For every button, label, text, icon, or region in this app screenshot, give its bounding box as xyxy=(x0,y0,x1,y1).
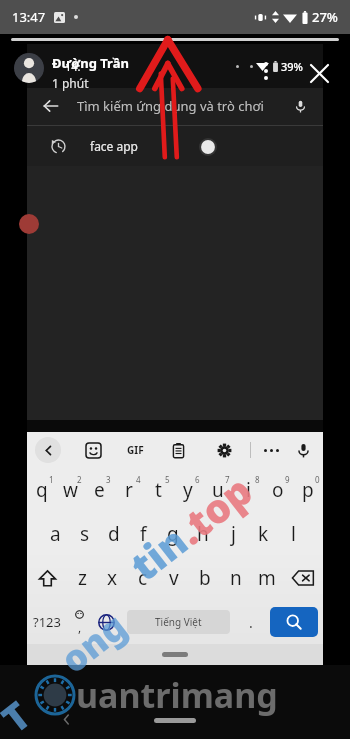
button[interactable]: z xyxy=(67,556,97,600)
button[interactable]: w xyxy=(56,468,85,512)
button[interactable]: a xyxy=(41,512,70,556)
staticText: x xyxy=(107,565,118,591)
staticText: o xyxy=(272,477,284,503)
staticText: p xyxy=(302,477,314,503)
button[interactable]: o xyxy=(263,468,293,512)
staticText: h xyxy=(197,521,209,547)
staticText: 14: xyxy=(65,59,81,74)
staticText: . xyxy=(249,613,253,632)
button[interactable]: s xyxy=(70,512,99,556)
staticText: ?123 xyxy=(33,613,61,631)
button[interactable]: j xyxy=(218,512,248,556)
staticText: f xyxy=(140,521,147,547)
staticText: GIF xyxy=(127,443,144,457)
staticText: e xyxy=(94,477,105,503)
button[interactable]: n xyxy=(220,556,251,600)
staticText: m xyxy=(258,565,276,591)
staticText: v xyxy=(169,565,179,591)
button[interactable]: u xyxy=(203,468,233,512)
staticText: r xyxy=(125,477,133,503)
button[interactable]: i xyxy=(233,468,263,512)
button[interactable]: Settings xyxy=(212,438,236,462)
button[interactable]: v xyxy=(158,556,189,600)
button[interactable]: e xyxy=(85,468,114,512)
staticText: d xyxy=(108,521,120,547)
button[interactable]: Voice input xyxy=(291,438,315,462)
button[interactable]: c xyxy=(127,556,158,600)
button[interactable]: p xyxy=(293,468,323,512)
button[interactable]: Close xyxy=(306,60,332,86)
staticText: i xyxy=(246,477,251,503)
staticText: 39% xyxy=(281,59,303,74)
button[interactable]: More options xyxy=(264,62,268,80)
staticText: b xyxy=(199,565,211,591)
button[interactable]: Emoji xyxy=(81,438,105,462)
button[interactable]: Shift xyxy=(27,556,67,600)
staticText: 7 xyxy=(225,474,230,485)
button[interactable]: l xyxy=(278,512,308,556)
staticText: 2 xyxy=(77,474,82,485)
staticText: c xyxy=(138,565,148,591)
button[interactable]: d xyxy=(99,512,128,556)
button[interactable]: Tiếng Việt xyxy=(127,610,230,634)
staticText: q xyxy=(36,477,48,503)
staticText: a xyxy=(50,521,61,547)
staticText: 27% xyxy=(312,8,338,26)
button[interactable]: face app xyxy=(27,128,323,164)
button[interactable]: ?123 xyxy=(27,600,66,644)
button[interactable]: y xyxy=(173,468,203,512)
staticText: Đường Trần xyxy=(52,54,129,72)
button[interactable]: h xyxy=(188,512,218,556)
staticText: .top xyxy=(165,462,263,555)
staticText: g xyxy=(167,521,179,547)
button[interactable]: GIF xyxy=(127,438,144,462)
button[interactable]: f xyxy=(128,512,158,556)
staticText: Tìm kiếm ứng dụng và trò chơi xyxy=(77,97,264,115)
staticText: face app xyxy=(90,138,139,154)
button[interactable]: x xyxy=(97,556,127,600)
staticText: y xyxy=(183,477,193,503)
staticText: 9 xyxy=(285,474,290,485)
staticText: Tiếng Việt xyxy=(155,615,202,629)
button[interactable]: More options xyxy=(259,438,283,462)
button[interactable]: r xyxy=(114,468,143,512)
staticText: 0 xyxy=(315,474,320,485)
staticText: 1 phút xyxy=(52,75,89,91)
button[interactable]: . xyxy=(236,600,265,644)
button[interactable]: Home xyxy=(154,718,196,723)
staticText: 3 xyxy=(106,474,111,485)
staticText: u xyxy=(212,477,224,503)
staticText: z xyxy=(78,565,87,591)
staticText: , xyxy=(78,619,82,635)
button[interactable]: Change language xyxy=(92,600,121,644)
staticText: T xyxy=(0,688,40,739)
button[interactable]: t xyxy=(143,468,173,512)
button[interactable]: k xyxy=(248,512,278,556)
button[interactable]: Back xyxy=(35,437,61,463)
button[interactable]: Backspace xyxy=(282,556,323,600)
button[interactable]: Back xyxy=(37,92,65,120)
staticText: w xyxy=(63,477,78,503)
staticText: k xyxy=(258,521,269,547)
staticText: 13:47 xyxy=(12,8,46,26)
staticText: tin xyxy=(118,513,198,592)
button[interactable]: Clipboard xyxy=(166,438,190,462)
button[interactable]: m xyxy=(251,556,282,600)
button[interactable]: Voice search xyxy=(287,93,313,119)
button[interactable]: b xyxy=(189,556,220,600)
staticText: 8 xyxy=(255,474,260,485)
button[interactable]: g xyxy=(158,512,188,556)
button[interactable]: Search xyxy=(270,607,318,637)
button[interactable]: Back xyxy=(27,88,323,124)
staticText: 6 xyxy=(195,474,200,485)
button[interactable]: q xyxy=(27,468,56,512)
button[interactable]: Back xyxy=(58,711,74,727)
staticText: 4 xyxy=(136,474,141,485)
staticText: l xyxy=(291,521,296,547)
staticText: j xyxy=(231,521,236,547)
staticText: n xyxy=(230,565,242,591)
staticText: s xyxy=(80,521,90,547)
staticText: uantrimang xyxy=(76,672,278,718)
staticText: 1 xyxy=(49,474,54,485)
button[interactable]: Comma and emoji xyxy=(66,600,92,644)
